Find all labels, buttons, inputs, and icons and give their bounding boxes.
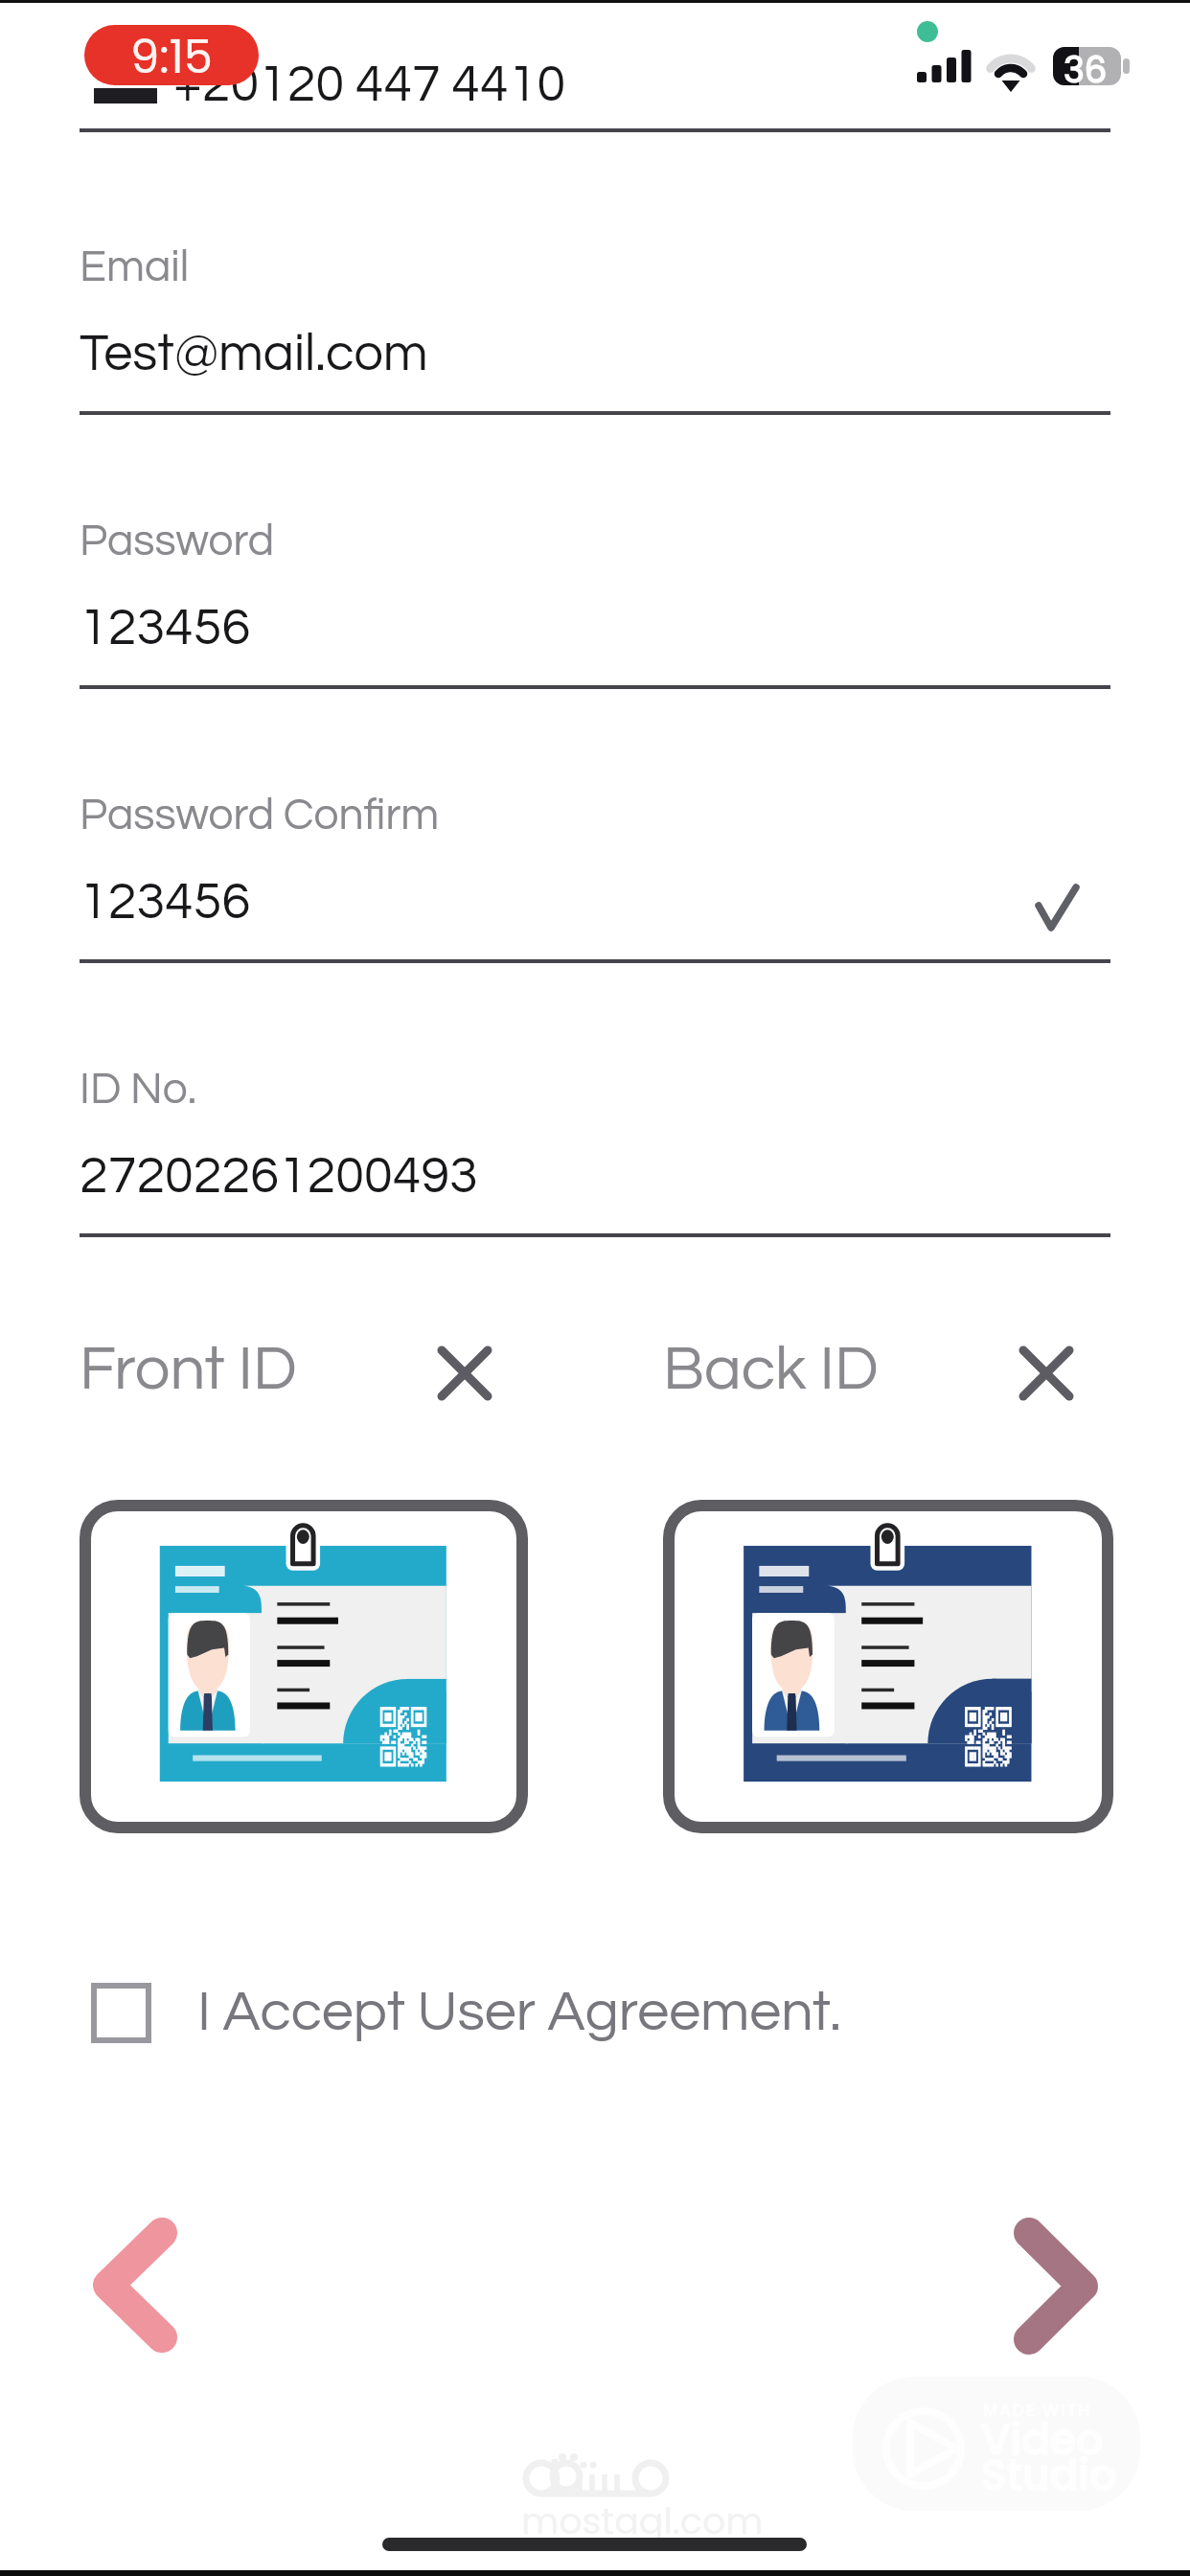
staticText: Front ID xyxy=(80,1338,297,1402)
staticText: 27202261200493 xyxy=(80,1150,478,1204)
button[interactable]: Remove back ID xyxy=(1018,1345,1074,1401)
button[interactable]: Email xyxy=(80,244,1110,436)
staticText: 123456 xyxy=(80,876,251,930)
staticText: Password Confirm xyxy=(80,793,440,838)
button[interactable]: Password xyxy=(80,518,1110,710)
staticText: 123456 xyxy=(80,602,251,655)
staticText: Password xyxy=(80,518,275,563)
staticText: 9:15 xyxy=(130,25,213,85)
staticText: Email xyxy=(80,244,190,289)
button[interactable]: Remove front ID xyxy=(437,1345,492,1401)
button[interactable]: I Accept User Agreement. xyxy=(80,1963,942,2062)
button[interactable]: ID No. xyxy=(80,1067,1110,1258)
staticText: 36 xyxy=(1064,45,1108,95)
staticText: +20120 447 4410 xyxy=(173,58,566,112)
button[interactable]: Back ID xyxy=(663,1345,1008,1413)
staticText: ID No. xyxy=(80,1067,197,1112)
staticText: I Accept User Agreement. xyxy=(197,1984,842,2042)
staticText: Test@mail.com xyxy=(80,328,428,381)
staticText: Back ID xyxy=(663,1338,879,1402)
button[interactable]: Front ID photo xyxy=(80,1500,528,1833)
button[interactable]: Front ID xyxy=(80,1345,424,1413)
button[interactable]: Previous xyxy=(93,2218,177,2353)
button[interactable]: Next xyxy=(1014,2218,1098,2355)
button[interactable]: Password Confirm xyxy=(80,793,1110,984)
staticText: mostaql.com xyxy=(521,2495,764,2546)
button[interactable]: Back ID photo xyxy=(663,1500,1113,1833)
